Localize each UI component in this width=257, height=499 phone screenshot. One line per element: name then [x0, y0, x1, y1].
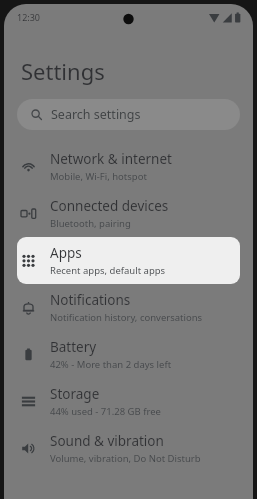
staticText: Notification history, conversations [50, 311, 203, 324]
button[interactable]: Notifications [4, 284, 253, 331]
button[interactable]: Sound & vibration [4, 425, 253, 472]
staticText: Connected devices [50, 197, 169, 215]
button[interactable]: Connected devices [4, 190, 253, 237]
staticText: 12:30 [17, 11, 41, 23]
staticText: Bluetooth, pairing [50, 217, 131, 230]
staticText: Notifications [50, 291, 131, 309]
staticText: Mobile, Wi-Fi, hotspot [50, 170, 147, 183]
button[interactable]: Storage [4, 378, 253, 425]
staticText: Recent apps, default apps [50, 264, 166, 277]
staticText: Storage [50, 385, 100, 403]
staticText: Network & internet [50, 150, 172, 168]
staticText: 42% - More than 2 days left [50, 358, 172, 371]
staticText: Apps [50, 244, 82, 262]
staticText: Battery [50, 338, 97, 356]
button[interactable]: Battery [4, 331, 253, 378]
staticText: 44% used - 71.28 GB free [50, 405, 161, 418]
button[interactable]: Network & internet [4, 143, 253, 190]
button[interactable]: Search settings [17, 99, 240, 130]
button[interactable]: Apps [17, 237, 240, 284]
staticText: Volume, vibration, Do Not Disturb [50, 452, 201, 465]
staticText: Search settings [51, 106, 141, 123]
staticText: Settings [21, 56, 105, 86]
staticText: Sound & vibration [50, 432, 164, 450]
